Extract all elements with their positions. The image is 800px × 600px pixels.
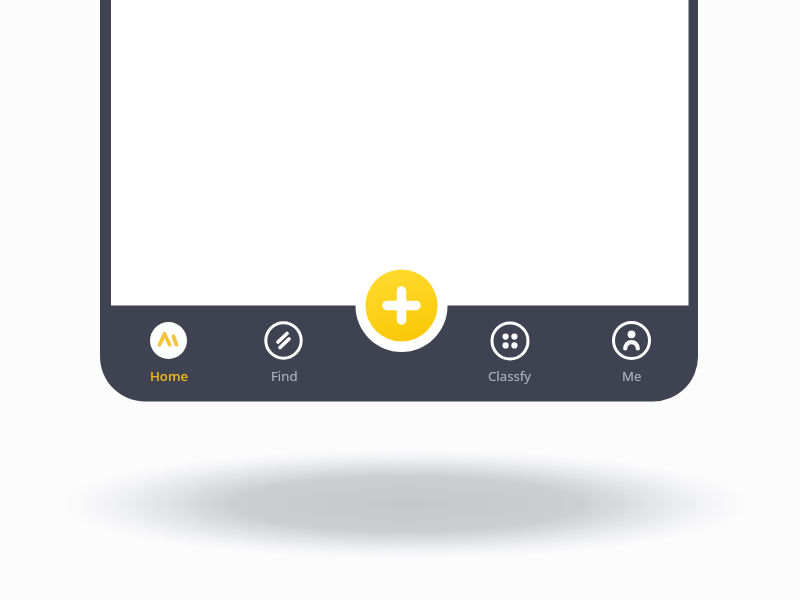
button[interactable]: Home — [124, 318, 214, 388]
button[interactable] — [366, 270, 438, 342]
staticText: Home — [150, 367, 188, 385]
staticText: Find — [271, 367, 298, 385]
staticText: Classfy — [488, 367, 532, 385]
button[interactable]: Me — [587, 318, 677, 388]
button[interactable]: Find — [239, 318, 329, 388]
button[interactable]: Classfy — [465, 318, 555, 388]
staticText: Me — [622, 367, 642, 385]
